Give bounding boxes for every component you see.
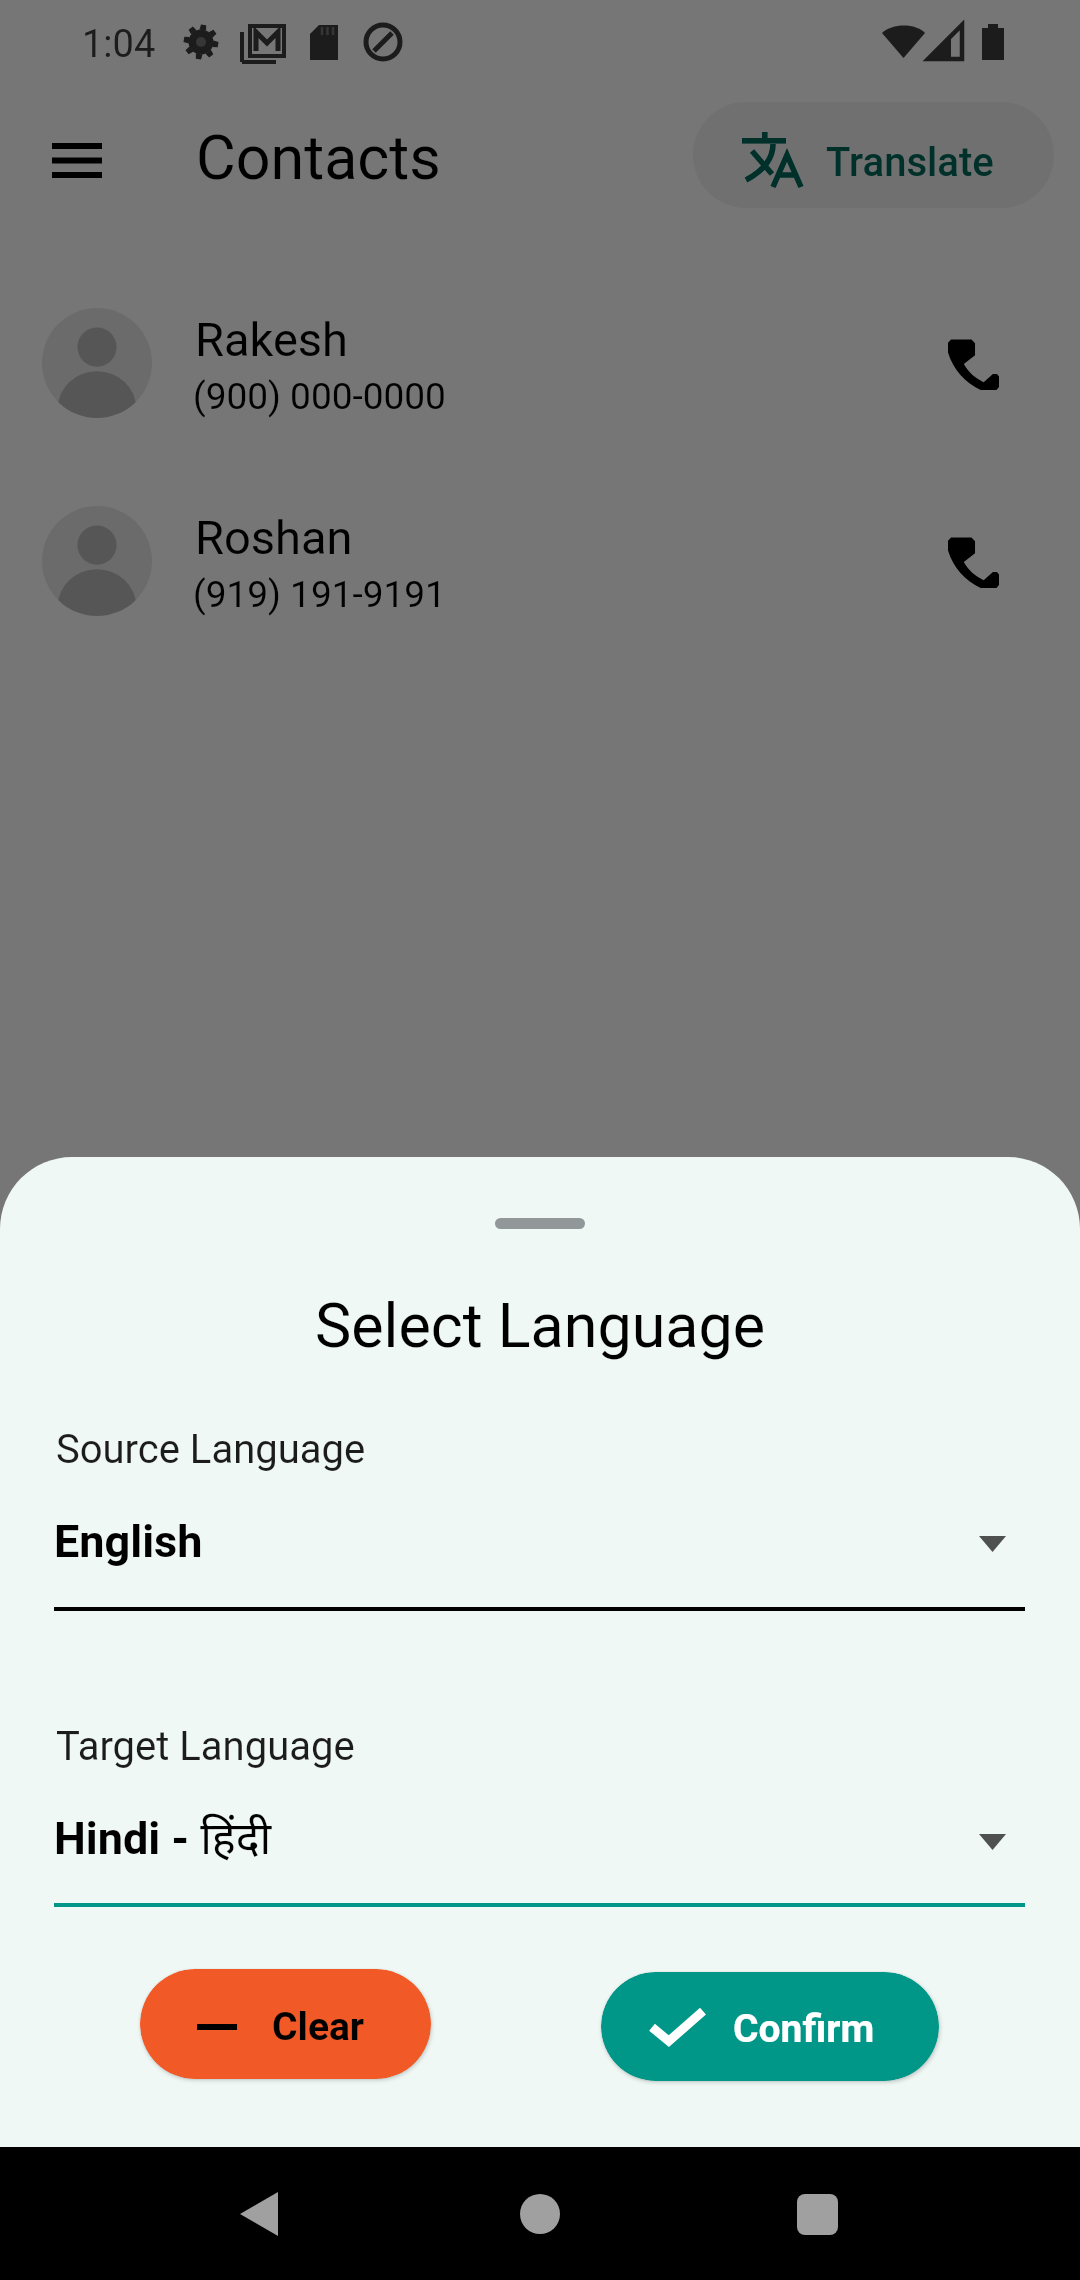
button[interactable]: Recent apps (769, 2166, 865, 2262)
staticText: Contacts (196, 122, 441, 193)
staticText: Target Language (56, 1723, 355, 1770)
staticText: 1:04 (82, 22, 156, 67)
button[interactable]: Translate (693, 102, 1054, 208)
staticText: (919) 191-9191 (193, 573, 446, 616)
button[interactable]: Open navigation menu (29, 112, 125, 208)
button[interactable]: Roshan (0, 506, 1080, 618)
staticText: Clear (272, 2004, 365, 2050)
button[interactable]: Home (492, 2166, 588, 2262)
staticText: Hindi - हिंदी (54, 1806, 272, 1867)
staticText: Confirm (733, 2006, 875, 2052)
staticText: (900) 000-0000 (193, 375, 446, 418)
button[interactable]: Back (211, 2166, 307, 2262)
button[interactable]: English (36, 1493, 1046, 1589)
staticText: Translate (826, 139, 994, 186)
button[interactable]: Clear (140, 1969, 431, 2079)
staticText: English (54, 1515, 203, 1568)
staticText: Rakesh (195, 312, 348, 367)
staticText: Roshan (195, 510, 353, 565)
staticText: Select Language (315, 1290, 766, 1361)
button[interactable]: Hindi - हिंदी (36, 1784, 1046, 1880)
button[interactable]: Confirm (601, 1972, 939, 2081)
button[interactable]: Rakesh (0, 308, 1080, 420)
staticText: Source Language (56, 1426, 366, 1473)
button[interactable]: Call Roshan (925, 514, 1021, 610)
button[interactable]: Call Rakesh (925, 316, 1021, 412)
